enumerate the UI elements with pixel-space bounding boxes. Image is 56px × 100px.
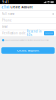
button[interactable]: Agree to terms bbox=[2, 39, 4, 41]
staticText: Create Account bbox=[10, 5, 32, 9]
staticText: Back bbox=[4, 5, 9, 9]
button[interactable]: Email bbox=[0, 24, 56, 30]
staticText: I have read and agree to the Terms of Se… bbox=[5, 39, 49, 41]
button[interactable]: Back bbox=[1, 4, 10, 10]
button[interactable]: Full name bbox=[0, 11, 56, 17]
staticText: Email bbox=[2, 25, 8, 28]
button[interactable]: Send Code bbox=[44, 31, 54, 35]
staticText: Send Code bbox=[45, 32, 53, 34]
staticText: Resend in 60s bbox=[27, 30, 42, 37]
staticText: Full name bbox=[2, 12, 15, 16]
button[interactable]: Phone bbox=[0, 17, 56, 23]
staticText: Phone bbox=[2, 19, 12, 22]
button[interactable]: Verification code bbox=[2, 30, 42, 37]
button[interactable]: Create Account bbox=[1, 47, 55, 54]
staticText: 9:41 bbox=[2, 0, 9, 4]
staticText: Verification code bbox=[2, 31, 26, 35]
staticText: Create Account bbox=[17, 49, 39, 52]
